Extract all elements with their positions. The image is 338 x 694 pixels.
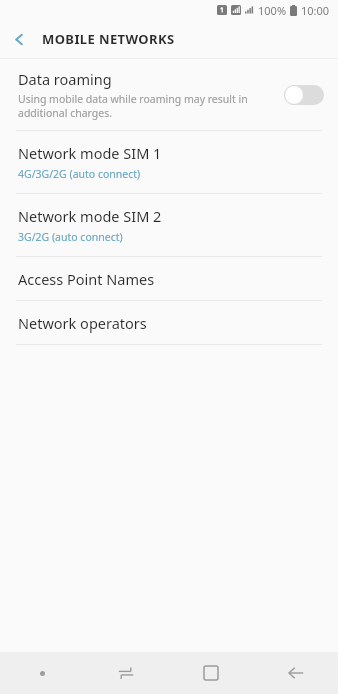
button[interactable]: Access Point Names [0, 257, 338, 300]
staticText: Using mobile data while roaming may resu… [18, 92, 274, 120]
staticText: 10:00 [301, 3, 330, 18]
staticText: MOBILE NETWORKS [42, 30, 175, 48]
button[interactable]: Menu [0, 652, 84, 694]
button[interactable]: Network operators [0, 301, 338, 344]
button[interactable]: Home [168, 652, 253, 694]
button[interactable]: Back [0, 20, 38, 58]
button[interactable]: Back [253, 652, 338, 694]
button[interactable]: Data roaming toggle [284, 84, 324, 106]
staticText: Network mode SIM 1 [18, 143, 162, 163]
button[interactable]: Network mode SIM 1 [0, 131, 338, 193]
staticText: 100% [258, 3, 287, 18]
button[interactable]: Network mode SIM 2 [0, 194, 338, 256]
staticText: Access Point Names [18, 269, 155, 289]
staticText: 3G/2G (auto connect) [18, 230, 123, 244]
button[interactable]: Recents [84, 652, 168, 694]
staticText: Network operators [18, 313, 147, 333]
staticText: Network mode SIM 2 [18, 206, 162, 226]
staticText: Data roaming [18, 69, 112, 89]
staticText: 4G/3G/2G (auto connect) [18, 167, 141, 181]
button[interactable]: Data roaming [0, 59, 338, 130]
